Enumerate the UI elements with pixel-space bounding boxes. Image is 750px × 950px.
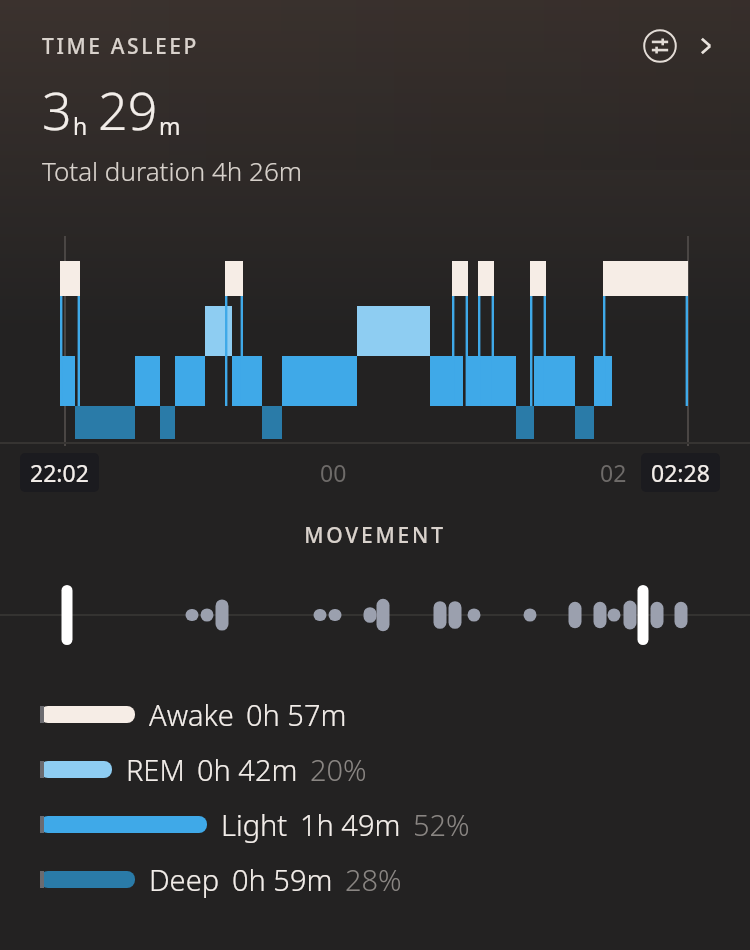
staticText: REM <box>126 750 185 789</box>
staticText: 0h 42m <box>197 750 298 789</box>
staticText: 0h 59m <box>232 860 333 899</box>
button[interactable]: Adjust sleep data <box>640 26 680 66</box>
staticText: 20% <box>310 750 367 789</box>
button[interactable]: Deep <box>40 860 734 899</box>
staticText: TIME ASLEEP <box>42 32 199 61</box>
staticText: 52% <box>413 805 470 844</box>
staticText: 0h 57m <box>246 695 347 734</box>
staticText: Total duration 4h 26m <box>42 153 303 188</box>
button[interactable]: Awake <box>40 695 734 734</box>
button[interactable]: More details <box>686 26 726 66</box>
button[interactable]: Light <box>40 805 734 844</box>
staticText: Deep <box>149 860 220 899</box>
staticText: 28% <box>345 860 402 899</box>
staticText: 1h 49m <box>300 805 401 844</box>
staticText: Awake <box>149 695 234 734</box>
staticText: h <box>73 110 88 141</box>
staticText: 22:02 <box>30 457 89 488</box>
staticText: Light <box>221 805 288 844</box>
staticText: 00 <box>320 457 347 488</box>
staticText: MOVEMENT <box>0 521 750 550</box>
staticText: 3 <box>42 74 72 145</box>
button[interactable]: REM <box>40 750 734 789</box>
staticText: 02 <box>600 457 627 488</box>
staticText: 02:28 <box>651 457 710 488</box>
staticText: m <box>159 110 181 141</box>
staticText: 29 <box>98 74 158 145</box>
